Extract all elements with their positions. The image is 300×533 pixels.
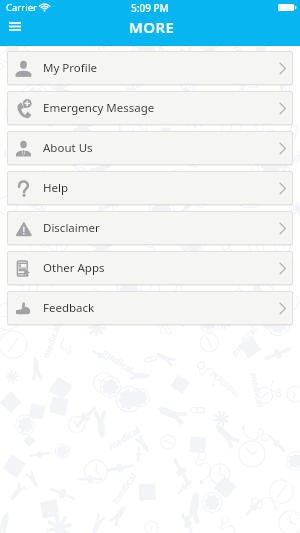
- staticText: Other Apps: [43, 260, 105, 276]
- staticText: Disclaimer: [43, 220, 100, 236]
- staticText: 5:09 PM: [131, 1, 169, 15]
- staticText: Carrier: [6, 1, 37, 14]
- button[interactable]: Disclaimer: [7, 211, 293, 245]
- button[interactable]: Feedback: [7, 291, 293, 325]
- staticText: My Profile: [43, 60, 98, 76]
- button[interactable]: Help: [7, 171, 293, 205]
- button[interactable]: Menu: [2, 15, 28, 37]
- staticText: Feedback: [43, 300, 95, 316]
- staticText: About Us: [43, 140, 93, 156]
- staticText: Help: [43, 180, 69, 196]
- button[interactable]: My Profile: [7, 51, 293, 85]
- staticText: MORE: [129, 17, 175, 37]
- button[interactable]: About Us: [7, 131, 293, 165]
- button[interactable]: Emergency Message: [7, 91, 293, 125]
- staticText: Emergency Message: [43, 100, 155, 116]
- button[interactable]: Other Apps: [7, 251, 293, 285]
